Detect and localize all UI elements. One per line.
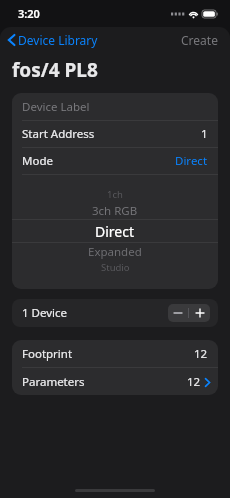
staticText: Studio [101,261,130,274]
staticText: 1ch [107,188,123,201]
staticText: Footprint [22,346,73,362]
staticText: 3ch RGB [92,203,138,219]
staticText: Create [181,32,218,48]
button[interactable]: Device Label [12,93,218,120]
staticText: 1 Device [22,305,68,321]
button[interactable]: Mode [12,148,218,174]
button[interactable]: Decrease device count [168,304,188,322]
staticText: Device Label [22,99,90,115]
staticText: fos/4 PL8 [12,57,98,83]
button[interactable]: Increase device count [189,304,210,322]
button[interactable]: Footprint [12,340,218,367]
button[interactable]: Start Address [12,121,218,147]
button[interactable]: Parameters [12,368,218,395]
staticText: Device Library [18,32,98,48]
staticText: 1 [201,126,208,142]
staticText: Direct [95,222,135,241]
staticText: 12 [194,346,208,362]
staticText: Parameters [22,374,85,390]
staticText: Expanded [88,244,142,260]
staticText: Direct [175,153,208,169]
staticText: 3:20 [18,6,40,21]
button[interactable]: Create [169,28,230,52]
staticText: Mode [22,153,53,169]
button[interactable]: Device Library [0,29,106,51]
staticText: Start Address [22,126,95,142]
staticText: 12 [187,374,201,390]
